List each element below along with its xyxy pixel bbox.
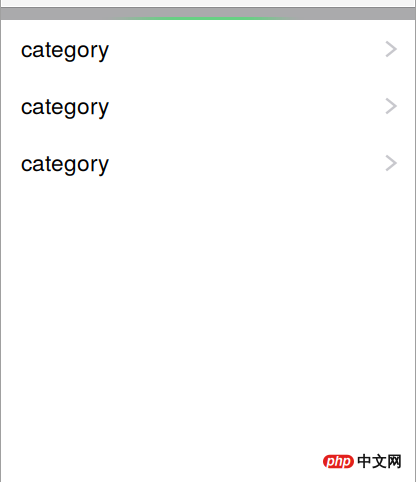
staticText: category bbox=[21, 31, 109, 64]
staticText: 中文网 bbox=[357, 452, 402, 470]
button[interactable]: category bbox=[0, 20, 416, 77]
staticText: php bbox=[326, 451, 350, 470]
staticText: category bbox=[21, 88, 109, 121]
button[interactable]: category bbox=[0, 134, 416, 191]
button[interactable]: category bbox=[0, 77, 416, 134]
staticText: category bbox=[21, 145, 109, 178]
